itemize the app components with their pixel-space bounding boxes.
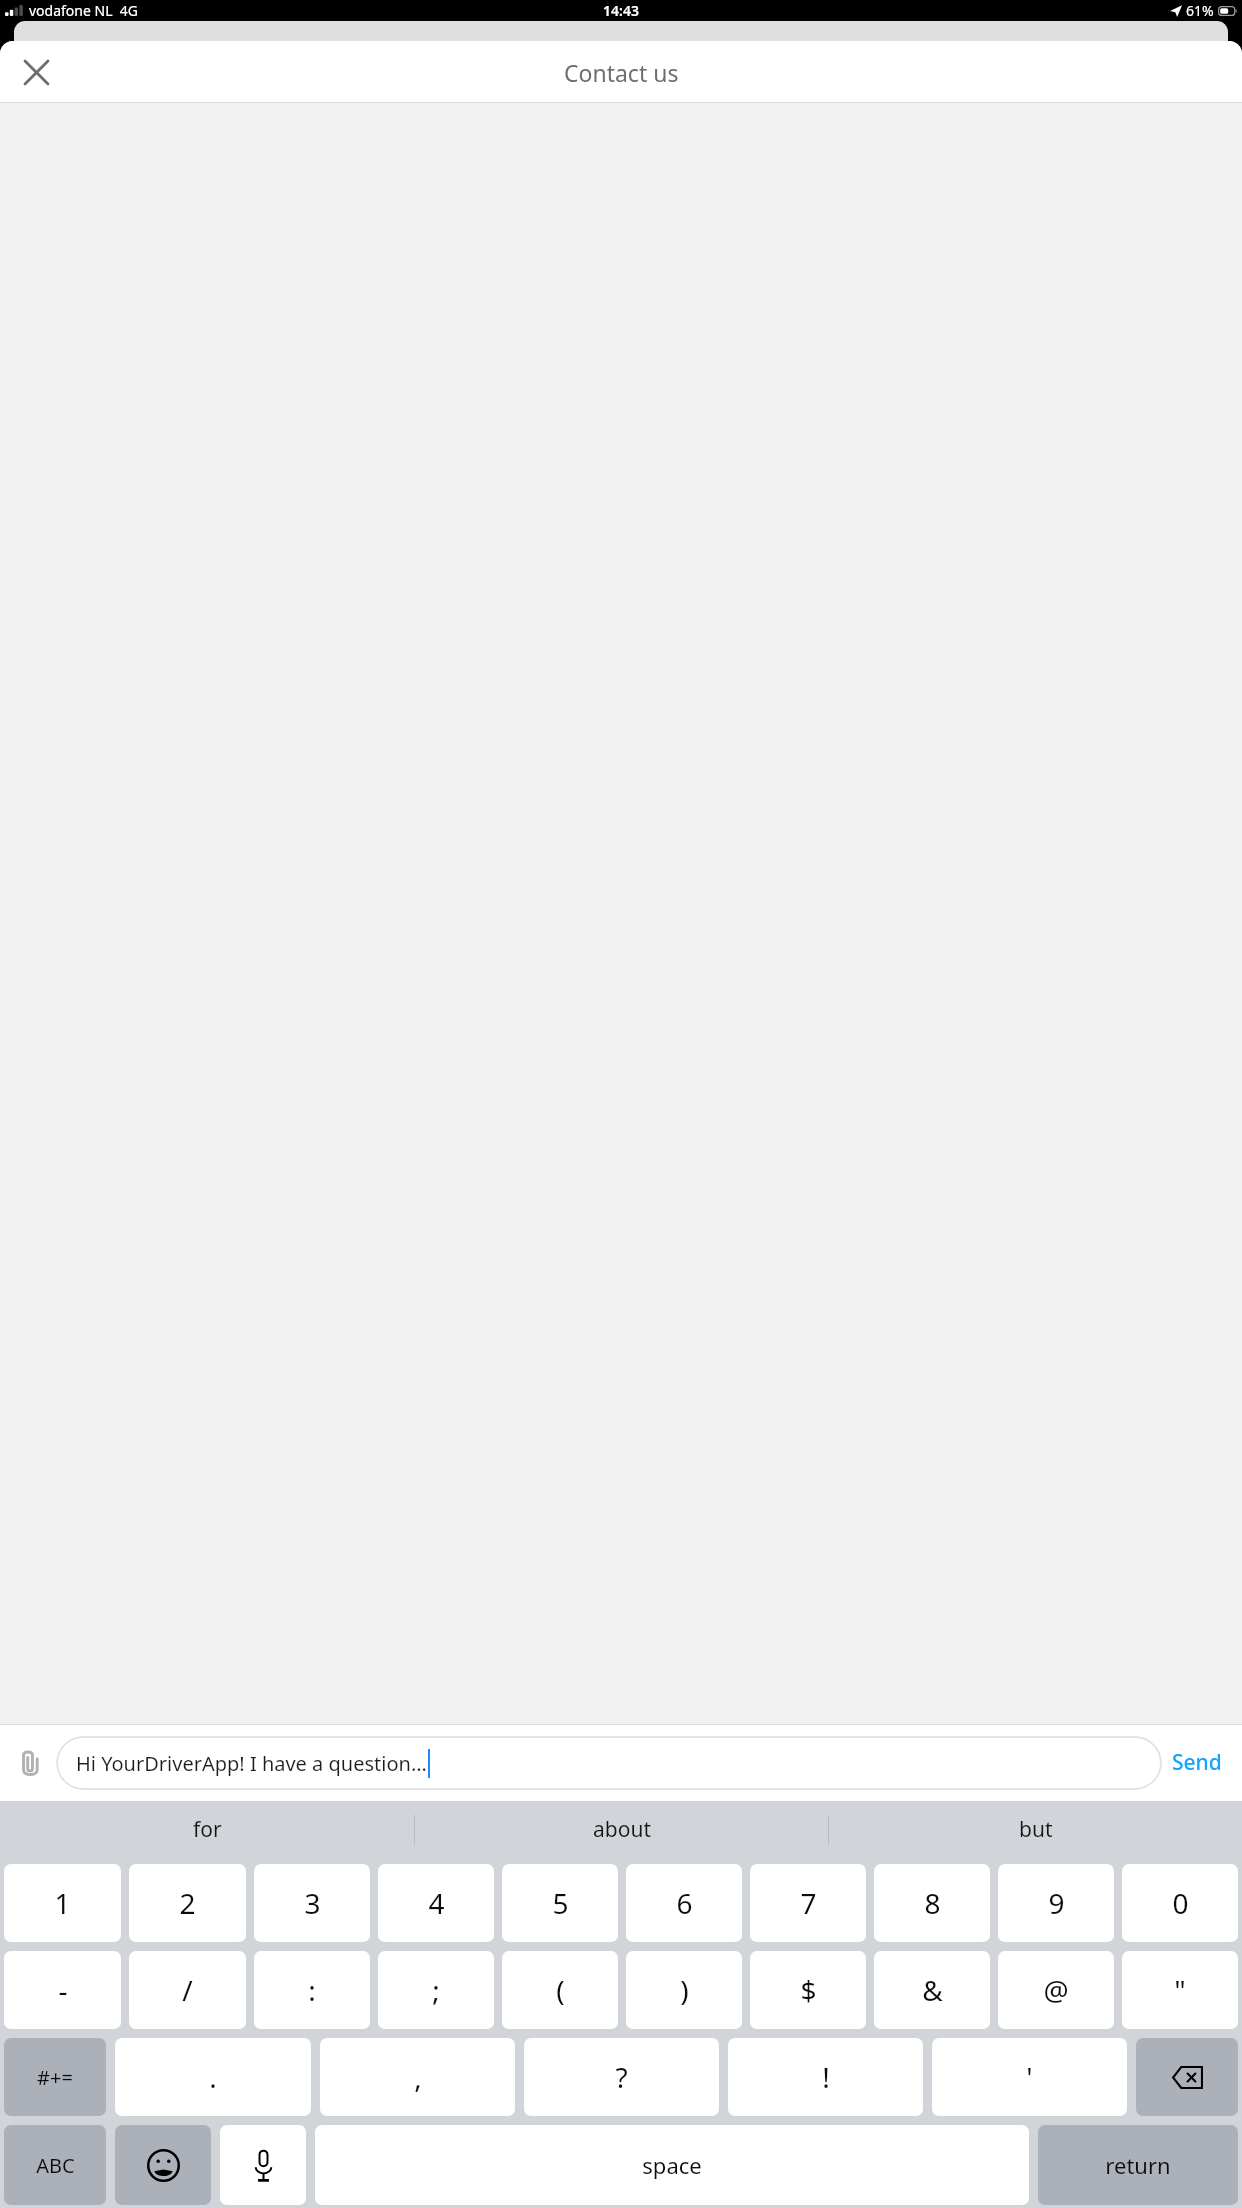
button[interactable]: " <box>1122 1951 1238 2029</box>
button[interactable]: & <box>874 1951 990 2029</box>
button[interactable]: ; <box>378 1951 494 2029</box>
button[interactable]: return <box>1038 2125 1238 2205</box>
staticText: about <box>593 1815 651 1844</box>
button[interactable]: 2 <box>129 1864 246 1942</box>
button[interactable]: 4 <box>378 1864 494 1942</box>
staticText: ! <box>822 2058 830 2096</box>
button[interactable]: ' <box>932 2038 1127 2116</box>
staticText: 9 <box>1048 1884 1065 1922</box>
staticText: 61% <box>1186 1 1214 20</box>
staticText: 14:43 <box>603 1 639 20</box>
staticText: return <box>1105 2150 1171 2180</box>
button[interactable]: / <box>129 1951 246 2029</box>
staticText: 4 <box>428 1884 445 1922</box>
staticText: Send <box>1172 1748 1222 1777</box>
button[interactable]: 3 <box>254 1864 370 1942</box>
staticText: , <box>414 2058 422 2096</box>
staticText: 2 <box>179 1884 196 1922</box>
staticText: 3 <box>304 1884 321 1922</box>
button[interactable]: 7 <box>750 1864 866 1942</box>
button[interactable]: 6 <box>626 1864 742 1942</box>
staticText: & <box>922 1971 943 2009</box>
staticText: 6 <box>676 1884 693 1922</box>
button[interactable]: ! <box>728 2038 923 2116</box>
button[interactable]: Emoji <box>115 2125 211 2205</box>
button[interactable]: 9 <box>998 1864 1114 1942</box>
staticText: " <box>1174 1971 1186 2009</box>
staticText: 1 <box>54 1884 71 1922</box>
staticText: ) <box>680 1971 689 2009</box>
staticText: . <box>209 2058 217 2096</box>
button[interactable]: Backspace <box>1136 2038 1238 2116</box>
button[interactable]: ) <box>626 1951 742 2029</box>
button[interactable]: ABC <box>4 2125 106 2205</box>
button[interactable]: @ <box>998 1951 1114 2029</box>
staticText: Contact us <box>564 57 679 88</box>
staticText: @ <box>1043 1971 1069 2009</box>
button[interactable]: for <box>0 1801 414 1858</box>
button[interactable]: about <box>415 1801 828 1858</box>
staticText: 8 <box>924 1884 941 1922</box>
staticText: : <box>308 1971 316 2009</box>
button[interactable]: Dictation <box>220 2125 306 2205</box>
staticText: ? <box>615 2058 628 2096</box>
button[interactable]: 0 <box>1122 1864 1238 1942</box>
staticText: but <box>1019 1815 1053 1844</box>
button[interactable]: #+= <box>4 2038 106 2116</box>
staticText: ABC <box>36 2152 75 2179</box>
staticText: $ <box>800 1971 817 2009</box>
button[interactable]: , <box>320 2038 515 2116</box>
button[interactable]: $ <box>750 1951 866 2029</box>
staticText: 0 <box>1172 1884 1189 1922</box>
button[interactable]: ( <box>502 1951 618 2029</box>
button[interactable]: 5 <box>502 1864 618 1942</box>
staticText: 7 <box>800 1884 817 1922</box>
staticText: space <box>642 2150 702 2180</box>
button[interactable]: ? <box>524 2038 719 2116</box>
staticText: for <box>193 1815 222 1844</box>
button[interactable]: Hi YourDriverApp! I have a question... <box>56 1736 1162 1790</box>
button[interactable]: 1 <box>4 1864 121 1942</box>
staticText: ' <box>1026 2058 1033 2096</box>
staticText: ( <box>556 1971 565 2009</box>
button[interactable]: Attach file <box>8 1740 54 1786</box>
staticText: Hi YourDriverApp! I have a question... <box>76 1750 427 1777</box>
button[interactable]: space <box>315 2125 1029 2205</box>
button[interactable]: Close <box>12 48 60 96</box>
button[interactable]: but <box>829 1801 1242 1858</box>
staticText: #+= <box>37 2064 73 2091</box>
button[interactable]: . <box>115 2038 311 2116</box>
staticText: 5 <box>552 1884 569 1922</box>
button[interactable]: : <box>254 1951 370 2029</box>
button[interactable]: 8 <box>874 1864 990 1942</box>
staticText: vodafone NL 4G <box>29 1 138 20</box>
staticText: ; <box>432 1971 440 2009</box>
button[interactable]: Send <box>1162 1738 1232 1787</box>
button[interactable]: - <box>4 1951 121 2029</box>
staticText: - <box>58 1971 68 2009</box>
staticText: / <box>182 1971 193 2009</box>
